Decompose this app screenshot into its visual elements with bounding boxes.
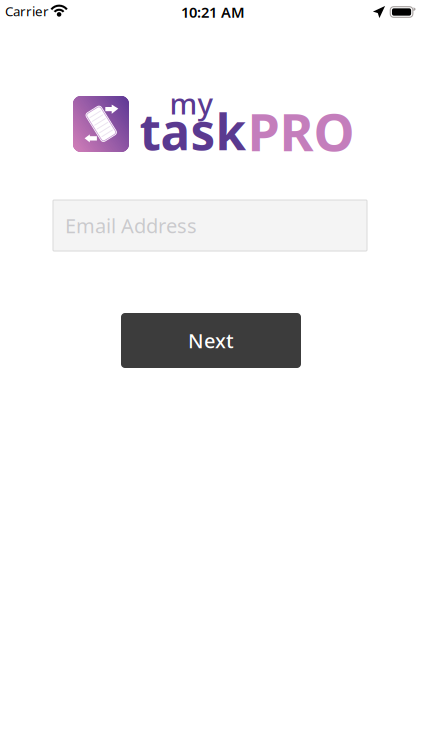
staticText: Email Address [65,212,197,239]
staticText: Carrier [5,2,49,20]
staticText: Next [188,327,234,354]
staticText: PRO [247,96,354,166]
button[interactable]: Next [121,313,301,368]
button[interactable]: Email Address [53,200,367,251]
staticText: task [139,98,246,164]
staticText: 10:21 AM [181,2,245,22]
staticText: my [169,83,212,122]
